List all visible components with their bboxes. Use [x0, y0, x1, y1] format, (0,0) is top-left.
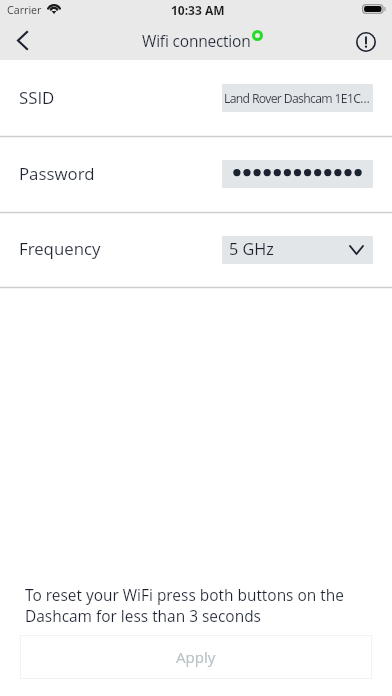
button[interactable]: Back: [7, 25, 38, 56]
staticText: Password: [19, 162, 95, 185]
staticText: Land Rover Dashcam 1E1C…: [224, 90, 370, 107]
staticText: Frequency: [19, 237, 101, 260]
button[interactable]: SSID: [0, 60, 392, 136]
button[interactable]: Password: [0, 136, 392, 212]
staticText: To reset your WiFi press both buttons on…: [25, 584, 370, 626]
staticText: 10:33 AM: [171, 2, 225, 18]
staticText: Carrier: [7, 3, 42, 18]
staticText: Apply: [176, 647, 216, 668]
button[interactable]: Information: [350, 26, 381, 57]
button[interactable]: Apply: [20, 635, 372, 679]
staticText: Wifi connection: [142, 30, 251, 51]
button[interactable]: Frequency: [0, 212, 392, 287]
button[interactable]: 5 GHz: [222, 236, 373, 264]
staticText: SSID: [19, 86, 55, 109]
staticText: 5 GHz: [229, 238, 274, 260]
